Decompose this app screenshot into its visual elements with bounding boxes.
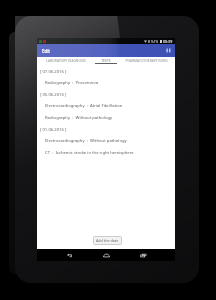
button[interactable]: Home — [100, 250, 112, 261]
staticText: CT : Ischemic stroke in the right hemisp… — [45, 150, 134, 156]
staticText: Add the date — [96, 238, 119, 243]
button[interactable]: LABORATORY DIAGNOSIS — [37, 57, 94, 65]
staticText: [ 01.06.2016 ] — [40, 127, 67, 133]
staticText: [ 05.06.2016 ] — [40, 92, 67, 98]
button[interactable]: [ 07.06.2016 ] — [37, 66, 175, 77]
staticText: 00:39 — [163, 39, 173, 44]
staticText: PHARMACOTHERAPY/SURG — [125, 58, 168, 62]
staticText: Electrocardiography : Without pathology — [45, 138, 127, 144]
button[interactable]: TESTS — [94, 57, 117, 65]
button[interactable]: Edit — [37, 44, 175, 57]
button[interactable]: More options — [165, 47, 172, 54]
button[interactable]: Add the date — [93, 236, 122, 245]
button[interactable]: Radiography : Without pathology — [37, 112, 175, 124]
staticText: [ 07.06.2016 ] — [40, 69, 67, 75]
button[interactable]: Radiography : Pneumonia — [37, 77, 175, 89]
button[interactable]: Recent apps — [137, 250, 149, 261]
button[interactable]: CT : Ischemic stroke in the right hemisp… — [37, 147, 175, 159]
staticText: LABORATORY DIAGNOSIS — [46, 58, 86, 62]
staticText: TESTS — [101, 58, 111, 62]
button[interactable]: [ 05.06.2016 ] — [37, 89, 175, 100]
staticText: Electrocardiography : Atrial Fibrillatio… — [45, 103, 123, 109]
button[interactable]: PHARMACOTHERAPY/SURG — [117, 57, 175, 65]
staticText: Edit — [42, 48, 51, 54]
staticText: %1% — [151, 40, 159, 44]
button[interactable]: Electrocardiography : Without pathology — [37, 135, 175, 147]
button[interactable]: [ 01.06.2016 ] — [37, 124, 175, 135]
button[interactable]: Back — [63, 250, 75, 261]
staticText: Radiography : Without pathology — [45, 115, 113, 121]
staticText: Radiography : Pneumonia — [45, 80, 99, 86]
button[interactable]: Electrocardiography : Atrial Fibrillatio… — [37, 100, 175, 112]
